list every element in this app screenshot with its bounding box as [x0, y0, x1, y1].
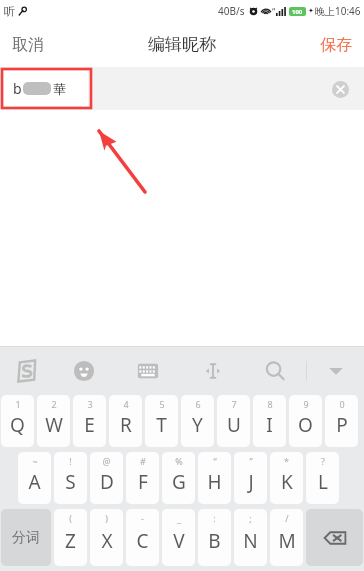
- staticText: F: [138, 469, 148, 495]
- button[interactable]: ~: [18, 452, 51, 504]
- button[interactable]: ;: [234, 509, 267, 566]
- button[interactable]: b: [4, 71, 88, 106]
- staticText: 1: [15, 398, 21, 410]
- staticText: ”: [249, 455, 253, 467]
- staticText: “: [272, 5, 276, 17]
- staticText: 9: [303, 398, 309, 410]
- staticText: C: [136, 528, 149, 554]
- staticText: %: [175, 455, 183, 467]
- staticText: H: [207, 469, 222, 495]
- staticText: 華: [53, 81, 66, 97]
- staticText: #: [140, 455, 146, 467]
- button[interactable]: 8: [253, 395, 286, 447]
- button[interactable]: “: [198, 452, 231, 504]
- button[interactable]: ”: [234, 452, 267, 504]
- staticText: ;: [249, 512, 252, 524]
- button[interactable]: Clear text: [328, 77, 352, 101]
- staticText: !: [69, 455, 72, 467]
- button[interactable]: /: [270, 509, 303, 566]
- button[interactable]: 7: [217, 395, 250, 447]
- staticText: J: [248, 469, 254, 495]
- button[interactable]: -: [126, 509, 159, 566]
- button[interactable]: 4: [109, 395, 142, 447]
- button[interactable]: Keyboard layout: [114, 347, 182, 395]
- staticText: b: [13, 79, 22, 98]
- staticText: 8: [267, 398, 273, 410]
- staticText: 分词: [12, 529, 40, 547]
- button[interactable]: Collapse keyboard: [307, 347, 364, 395]
- staticText: 7: [231, 398, 237, 410]
- staticText: R: [120, 412, 132, 438]
- staticText: -: [141, 512, 144, 524]
- staticText: ~: [32, 455, 38, 467]
- button[interactable]: *: [270, 452, 303, 504]
- staticText: 2: [51, 398, 57, 410]
- button[interactable]: 2: [37, 395, 70, 447]
- button[interactable]: 分词: [1, 509, 51, 566]
- button[interactable]: (: [54, 509, 87, 566]
- staticText: N: [243, 528, 258, 554]
- button[interactable]: Move cursor: [182, 347, 244, 395]
- staticText: V: [173, 528, 185, 554]
- staticText: “: [213, 455, 217, 467]
- staticText: @: [102, 455, 111, 467]
- button[interactable]: @: [90, 452, 123, 504]
- button[interactable]: Search: [244, 347, 306, 395]
- button[interactable]: _: [162, 509, 195, 566]
- button[interactable]: 取消: [0, 25, 56, 65]
- button[interactable]: 5: [145, 395, 178, 447]
- button[interactable]: :: [198, 509, 231, 566]
- staticText: U: [227, 412, 241, 438]
- staticText: *: [284, 455, 289, 467]
- staticText: W: [45, 412, 63, 438]
- staticText: K: [281, 469, 293, 495]
- staticText: 取消: [12, 35, 44, 55]
- staticText: /: [285, 512, 289, 524]
- button[interactable]: 3: [73, 395, 106, 447]
- staticText: 晚上10:46: [315, 4, 361, 18]
- staticText: Y: [192, 412, 203, 438]
- button[interactable]: 保存: [308, 25, 364, 65]
- staticText: G: [172, 469, 186, 495]
- staticText: Z: [65, 528, 76, 554]
- staticText: (: [69, 512, 72, 524]
- staticText: 听: [4, 4, 15, 18]
- staticText: A: [28, 469, 41, 495]
- staticText: 5: [159, 398, 165, 410]
- staticText: S: [65, 469, 76, 495]
- button[interactable]: 0: [325, 395, 358, 447]
- staticText: T: [156, 412, 167, 438]
- staticText: X: [101, 528, 113, 554]
- button[interactable]: #: [126, 452, 159, 504]
- staticText: E: [84, 412, 95, 438]
- staticText: P: [336, 412, 348, 438]
- staticText: 6: [195, 398, 201, 410]
- button[interactable]: Emoji: [54, 347, 114, 395]
- staticText: ✦: [308, 7, 314, 15]
- button[interactable]: ): [90, 509, 123, 566]
- staticText: M: [278, 528, 296, 554]
- button[interactable]: 6: [181, 395, 214, 447]
- staticText: L: [318, 469, 328, 495]
- button[interactable]: !: [54, 452, 87, 504]
- staticText: I: [266, 412, 273, 438]
- staticText: 40B/s: [218, 4, 245, 18]
- staticText: _: [177, 512, 181, 524]
- staticText: Q: [10, 412, 25, 438]
- button[interactable]: Backspace: [306, 509, 363, 566]
- button[interactable]: 1: [1, 395, 34, 447]
- button[interactable]: %: [162, 452, 195, 504]
- staticText: O: [298, 412, 313, 438]
- staticText: :: [213, 512, 216, 524]
- staticText: ?: [321, 455, 325, 467]
- staticText: 3: [87, 398, 93, 410]
- staticText: 保存: [320, 35, 352, 55]
- staticText: 4: [123, 398, 129, 410]
- staticText: ): [105, 512, 108, 524]
- button[interactable]: ?: [306, 452, 339, 504]
- staticText: B: [208, 528, 221, 554]
- button[interactable]: Sogou input method: [0, 347, 54, 395]
- button[interactable]: 9: [289, 395, 322, 447]
- staticText: 编辑昵称: [148, 34, 216, 55]
- staticText: D: [100, 469, 114, 495]
